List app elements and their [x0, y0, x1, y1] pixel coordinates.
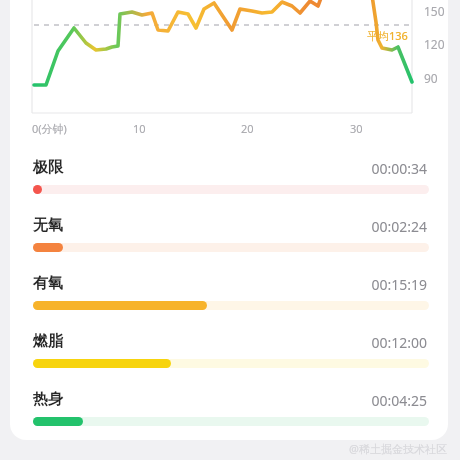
staticText: 10 [133, 121, 146, 136]
staticText: 00:15:19 [334, 275, 427, 294]
button[interactable]: 有氧 [24, 270, 436, 314]
staticText: 00:02:24 [334, 217, 427, 236]
button[interactable]: 极限 [24, 154, 436, 198]
staticText: 120 [424, 36, 445, 52]
staticText: 平均136 [367, 28, 408, 43]
button[interactable]: 燃脂 [24, 328, 436, 372]
staticText: 无氧 [33, 216, 63, 235]
button[interactable]: 无氧 [24, 212, 436, 256]
button[interactable]: 热身 [24, 386, 436, 430]
staticText: 极限 [33, 158, 63, 177]
staticText: @稀土掘金技术社区 [330, 441, 447, 456]
staticText: 20 [241, 121, 254, 136]
staticText: 00:00:34 [334, 159, 427, 178]
staticText: 燃脂 [33, 332, 63, 351]
staticText: 00:04:25 [334, 391, 427, 410]
staticText: 有氧 [33, 274, 63, 293]
staticText: 00:12:00 [334, 333, 427, 352]
staticText: 热身 [33, 390, 63, 409]
staticText: 90 [424, 70, 438, 86]
staticText: 150 [424, 3, 445, 19]
staticText: 0(分钟) [32, 121, 67, 136]
staticText: 30 [350, 121, 363, 136]
